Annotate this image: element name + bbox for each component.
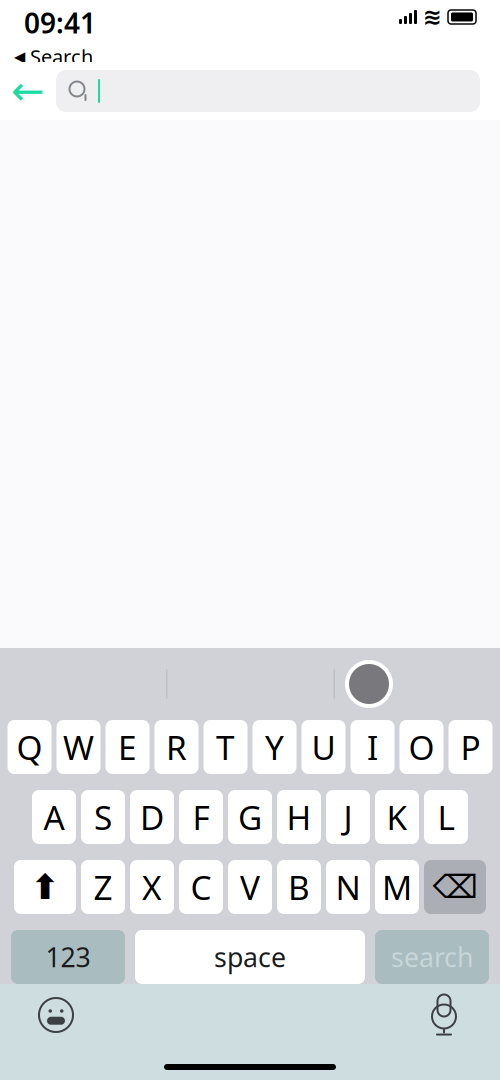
button[interactable]: A bbox=[32, 790, 76, 844]
staticText: E bbox=[118, 725, 137, 769]
button[interactable]: X bbox=[130, 860, 174, 914]
staticText: I bbox=[367, 725, 378, 769]
staticText: ◀ bbox=[14, 48, 25, 65]
staticText: J bbox=[343, 795, 352, 839]
button[interactable]: F bbox=[179, 790, 223, 844]
staticText: N bbox=[335, 865, 360, 909]
button[interactable]: T bbox=[203, 720, 247, 774]
button[interactable]: W bbox=[56, 720, 100, 774]
button[interactable]: Dictate bbox=[416, 987, 472, 1043]
staticText: M bbox=[382, 865, 412, 909]
button[interactable]: G bbox=[228, 790, 272, 844]
staticText: B bbox=[288, 865, 310, 909]
button[interactable]: Shift bbox=[14, 860, 76, 914]
staticText: S bbox=[94, 795, 112, 839]
button[interactable]: search bbox=[375, 930, 489, 984]
staticText: Search bbox=[30, 43, 93, 70]
button[interactable]: J bbox=[326, 790, 370, 844]
button[interactable]: O bbox=[399, 720, 443, 774]
staticText: 123 bbox=[45, 939, 90, 975]
button[interactable]: L bbox=[424, 790, 468, 844]
button[interactable]: space bbox=[135, 930, 365, 984]
button[interactable]: D bbox=[130, 790, 174, 844]
staticText: 09:41 bbox=[24, 4, 96, 41]
button[interactable]: Z bbox=[81, 860, 125, 914]
button[interactable]: B bbox=[277, 860, 321, 914]
button[interactable]: K bbox=[375, 790, 419, 844]
staticText: V bbox=[240, 865, 260, 909]
staticText: ⬆ bbox=[30, 867, 59, 907]
button[interactable]: 123 bbox=[11, 930, 125, 984]
staticText: A bbox=[43, 795, 64, 839]
staticText: ≋ bbox=[423, 4, 442, 30]
button[interactable]: E bbox=[105, 720, 149, 774]
staticText: C bbox=[190, 865, 211, 909]
staticText: O bbox=[408, 725, 434, 769]
button[interactable]: Delete bbox=[424, 860, 486, 914]
button[interactable]: Back bbox=[0, 67, 56, 115]
button[interactable] bbox=[56, 70, 480, 112]
button[interactable]: Y bbox=[252, 720, 296, 774]
staticText: W bbox=[63, 725, 94, 769]
button[interactable]: H bbox=[277, 790, 321, 844]
button[interactable]: R bbox=[154, 720, 198, 774]
button[interactable]: S bbox=[81, 790, 125, 844]
staticText: search bbox=[391, 939, 473, 975]
button[interactable]: V bbox=[228, 860, 272, 914]
button[interactable]: M bbox=[375, 860, 419, 914]
staticText: R bbox=[166, 725, 187, 769]
button[interactable]: Emoji bbox=[28, 987, 84, 1043]
staticText: H bbox=[286, 795, 311, 839]
button[interactable]: C bbox=[179, 860, 223, 914]
button[interactable]: U bbox=[301, 720, 345, 774]
staticText: Y bbox=[265, 725, 284, 769]
button[interactable]: P bbox=[448, 720, 492, 774]
staticText: ← bbox=[11, 68, 45, 114]
staticText: L bbox=[437, 795, 454, 839]
staticText: ⌫ bbox=[432, 869, 477, 905]
staticText: T bbox=[216, 725, 235, 769]
button[interactable]: N bbox=[326, 860, 370, 914]
staticText: Q bbox=[16, 725, 42, 769]
staticText: F bbox=[192, 795, 209, 839]
staticText: K bbox=[386, 795, 407, 839]
staticText: G bbox=[238, 795, 262, 839]
staticText: U bbox=[311, 725, 335, 769]
staticText: D bbox=[140, 795, 164, 839]
staticText: space bbox=[214, 939, 286, 975]
staticText: Z bbox=[93, 865, 112, 909]
staticText: P bbox=[460, 725, 480, 769]
staticText: X bbox=[142, 865, 162, 909]
button[interactable]: Q bbox=[7, 720, 51, 774]
button[interactable]: I bbox=[350, 720, 394, 774]
